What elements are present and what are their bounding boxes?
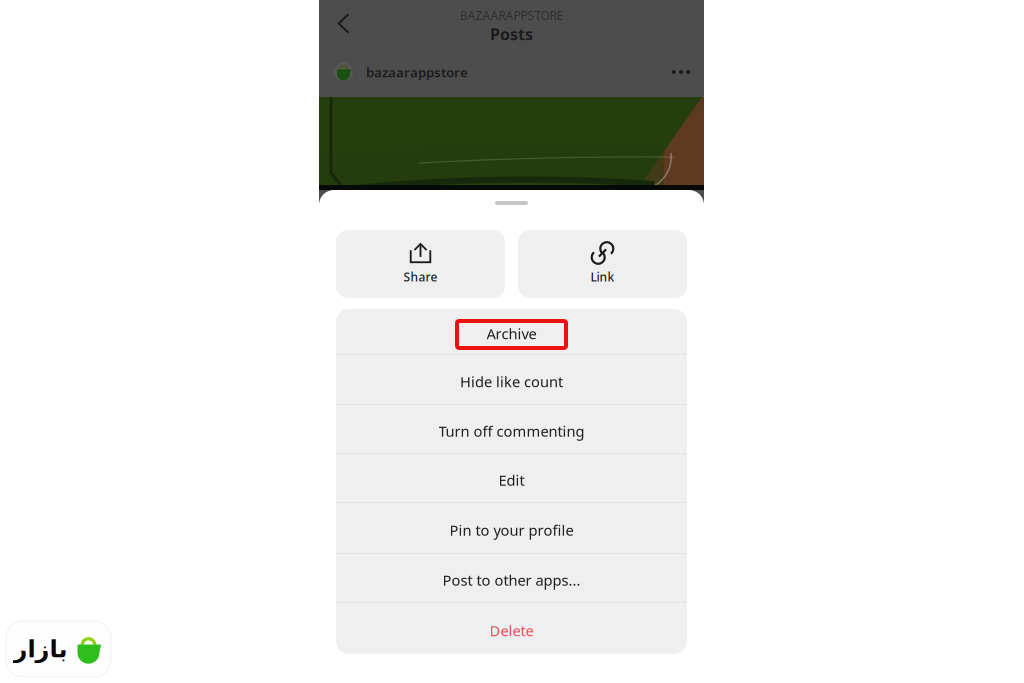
staticText: Post to other apps... (442, 570, 580, 590)
button[interactable]: Post to other apps... (336, 554, 687, 602)
staticText: Link (590, 269, 614, 285)
button[interactable]: Bazaar (6, 621, 111, 677)
button[interactable]: Link (518, 230, 687, 298)
staticText: Posts (490, 23, 533, 44)
staticText: Edit (498, 470, 524, 490)
button[interactable]: Pin to your profile (336, 503, 687, 553)
button[interactable]: Back (319, 0, 365, 47)
staticText: Delete (489, 621, 533, 640)
button[interactable]: Hide like count (336, 355, 687, 404)
staticText: BAZAARAPPSTORE (459, 7, 563, 23)
button[interactable]: More options (660, 50, 702, 94)
staticText: bazaarappstore (366, 63, 468, 81)
staticText: Turn off commenting (438, 421, 584, 441)
button[interactable]: Turn off commenting (336, 405, 687, 453)
staticText: Archive (486, 324, 536, 343)
staticText: Hide like count (460, 372, 563, 391)
button[interactable]: Delete (336, 603, 687, 654)
staticText: Pin to your profile (449, 520, 573, 540)
staticText: Share (403, 269, 437, 285)
staticText: بازار (13, 635, 67, 663)
button[interactable]: Archive (336, 309, 687, 354)
button[interactable]: Edit (336, 454, 687, 502)
button[interactable]: Share (336, 230, 505, 298)
